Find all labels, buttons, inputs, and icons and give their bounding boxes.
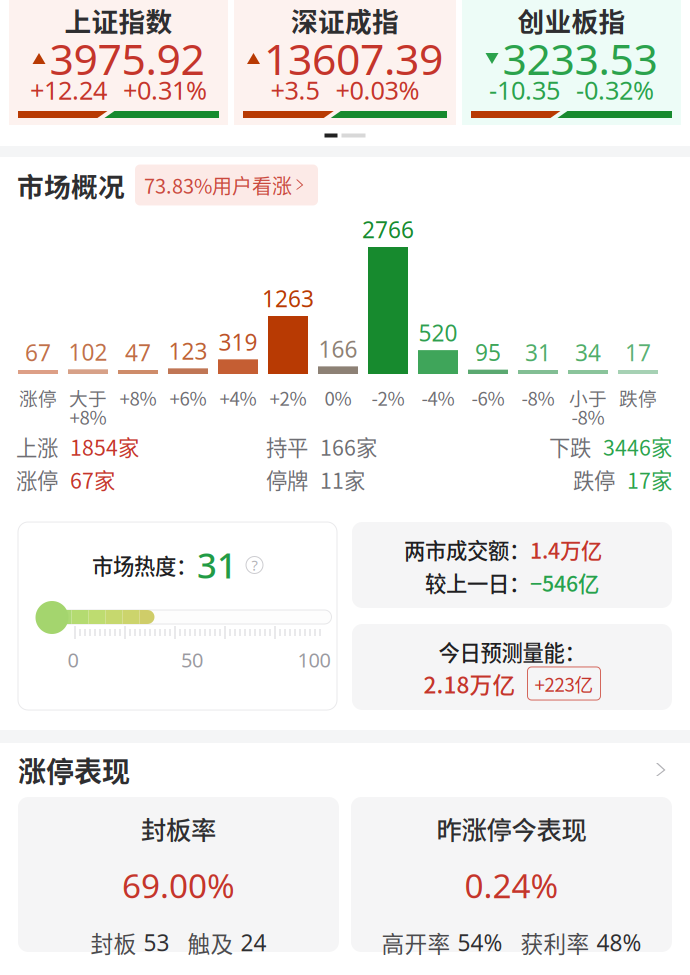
staticText: 1.4万亿: [530, 534, 602, 565]
staticText: 较上一日：: [425, 567, 530, 598]
staticText: 跌停: [619, 384, 657, 411]
staticText: 创业板指: [517, 1, 625, 39]
staticText: 48%: [596, 927, 641, 958]
staticText: 67家: [70, 464, 115, 495]
staticText: −546亿: [530, 567, 599, 598]
staticText: 深证成指: [291, 1, 399, 39]
staticText: +2%: [269, 384, 306, 411]
staticText: 73.83%用户看涨: [144, 170, 292, 199]
staticText: 获利率: [520, 926, 589, 959]
staticText: 1854家: [70, 431, 139, 462]
staticText: -6%: [471, 384, 504, 411]
staticText: 166: [318, 333, 357, 364]
button[interactable]: 涨停表现: [0, 743, 690, 797]
staticText: +0.31%: [123, 73, 207, 107]
staticText: 123: [168, 335, 207, 366]
staticText: 今日预测量能：: [438, 636, 585, 667]
staticText: -8%: [521, 384, 554, 411]
staticText: 100: [297, 646, 330, 673]
staticText: 2.18万亿: [423, 667, 515, 700]
staticText: 95: [475, 337, 501, 368]
staticText: 市场概况: [17, 166, 125, 204]
staticText: 47: [125, 337, 151, 368]
staticText: 跌停: [573, 464, 615, 495]
staticText: 大于: [69, 384, 107, 411]
staticText: 520: [418, 317, 457, 348]
staticText: +0.03%: [335, 73, 419, 107]
staticText: +6%: [169, 384, 206, 411]
staticText: +4%: [219, 384, 256, 411]
staticText: 31: [525, 337, 551, 368]
staticText: 3233.53: [502, 29, 657, 87]
staticText: 封板率: [141, 810, 216, 847]
staticText: 0: [67, 646, 78, 673]
staticText: 3975.92: [49, 29, 204, 87]
staticText: 两市成交额：: [404, 534, 530, 565]
staticText: 触及: [187, 926, 233, 959]
staticText: 涨停: [19, 384, 57, 411]
button[interactable]: 深证成指: [234, 0, 456, 125]
staticText: 17: [625, 337, 651, 368]
staticText: 53: [143, 927, 169, 958]
staticText: -10.35: [489, 73, 560, 107]
staticText: 13607.39: [264, 29, 443, 87]
staticText: 0%: [324, 384, 351, 411]
button[interactable]: 创业板指: [462, 0, 681, 125]
staticText: -0.32%: [576, 73, 654, 107]
staticText: +3.5: [270, 73, 319, 107]
staticText: 下跌: [549, 431, 591, 462]
staticText: +12.24: [30, 73, 107, 107]
staticText: 50: [181, 646, 203, 673]
staticText: 17家: [627, 464, 672, 495]
staticText: 昨涨停今表现: [436, 810, 586, 847]
button[interactable]: 73.83%用户看涨: [135, 164, 318, 205]
staticText: 市场热度：: [92, 550, 197, 580]
staticText: 102: [68, 336, 107, 367]
staticText: 停牌: [266, 464, 308, 495]
staticText: 24: [240, 927, 266, 958]
staticText: -2%: [371, 384, 404, 411]
staticText: 上证指数: [64, 1, 172, 39]
staticText: ?: [251, 555, 257, 575]
staticText: 54%: [457, 927, 502, 958]
staticText: 高开率: [381, 926, 450, 959]
staticText: 34: [575, 337, 601, 368]
staticText: 69.00%: [122, 863, 235, 908]
staticText: 11家: [320, 464, 365, 495]
staticText: 上涨: [16, 431, 58, 462]
staticText: 1263: [262, 283, 314, 314]
staticText: +223亿: [534, 670, 593, 697]
staticText: -4%: [421, 384, 454, 411]
button[interactable]: 上证指数: [9, 0, 228, 125]
staticText: 166家: [320, 431, 377, 462]
staticText: 3446家: [603, 431, 672, 462]
staticText: 持平: [266, 431, 308, 462]
staticText: 67: [25, 337, 51, 368]
staticText: 2766: [362, 214, 414, 245]
staticText: -8%: [571, 403, 604, 430]
staticText: 涨停: [16, 464, 58, 495]
staticText: 31: [197, 541, 237, 589]
staticText: +8%: [69, 403, 106, 430]
staticText: 0.24%: [464, 863, 558, 908]
staticText: 涨停表现: [18, 750, 130, 790]
staticText: 319: [218, 326, 257, 357]
staticText: +8%: [119, 384, 156, 411]
staticText: 小于: [569, 384, 607, 411]
staticText: 封板: [90, 926, 136, 959]
